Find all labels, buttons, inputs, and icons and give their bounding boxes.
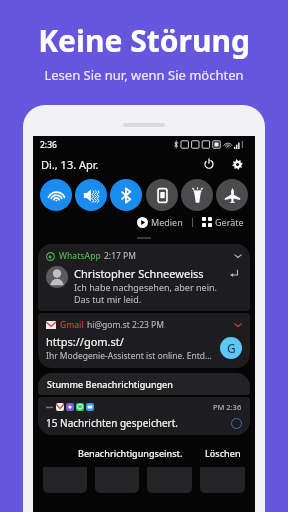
button[interactable]: Benachrichtigungseinst.: [73, 444, 188, 462]
button[interactable]: Bluetooth: [110, 179, 142, 211]
button[interactable]: WhatsApp: [38, 244, 250, 311]
button[interactable]: Automatisch drehen: [146, 179, 178, 211]
button[interactable]: Taschenlampe: [181, 179, 213, 211]
button[interactable]: Stumm: [75, 179, 107, 211]
staticText: Gmail: [60, 319, 84, 331]
button[interactable]: PM 2:36: [38, 397, 250, 435]
staticText: Geräte: [215, 216, 244, 228]
button[interactable]: Geräte: [200, 214, 246, 230]
button[interactable]: Ausschalten: [199, 154, 219, 174]
staticText: https://gom.st/: [46, 334, 124, 349]
button[interactable]: Medien: [135, 214, 185, 230]
button[interactable]: Löschen: [200, 444, 246, 462]
button[interactable]: Gmail: [38, 313, 250, 368]
staticText: Stumme Benachrichtigungen: [47, 378, 173, 390]
staticText: Medien: [151, 216, 183, 228]
staticText: Keine Störung: [0, 20, 288, 61]
button[interactable]: Antworten: [226, 266, 242, 282]
staticText: WhatsApp: [59, 250, 101, 262]
button[interactable]: Stumme Benachrichtigungen: [38, 373, 250, 395]
staticText: 15 Nachrichten gespeichert.: [46, 416, 178, 430]
staticText: PM 2:36: [213, 402, 242, 412]
staticText: Lesen Sie nur, wenn Sie möchten: [0, 66, 288, 84]
button[interactable]: Flugmodus: [216, 179, 248, 211]
staticText: Das tut mir leid.: [74, 293, 142, 305]
button[interactable]: [43, 467, 87, 493]
staticText: Benachrichtigungseinst.: [78, 447, 183, 459]
staticText: Christopher Schneeweiss: [74, 266, 204, 281]
staticText: 2:36: [40, 139, 57, 151]
button[interactable]: Einstellungen: [227, 154, 247, 174]
staticText: hi@gom.st 2:23 PM: [87, 319, 164, 331]
button[interactable]: WLAN: [40, 179, 72, 211]
staticText: 2:17 PM: [104, 250, 136, 262]
staticText: Di., 13. Apr.: [41, 157, 99, 172]
staticText: Ich habe nachgesehen, aber nein.: [74, 281, 217, 293]
staticText: Ihr Modegenie-Assistent ist online. Entd…: [46, 350, 215, 362]
staticText: G: [227, 340, 236, 356]
staticText: Löschen: [205, 447, 241, 459]
